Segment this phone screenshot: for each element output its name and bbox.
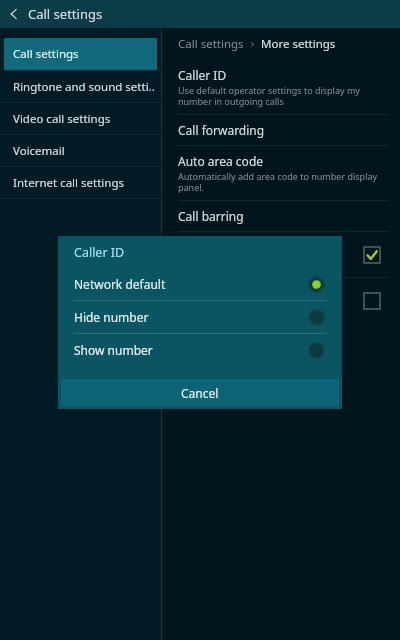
staticText: Ringtone and sound setti.. [13, 79, 155, 95]
button[interactable]: Internet call settings [0, 167, 161, 198]
staticText: Show number [74, 342, 309, 358]
staticText: Call settings [13, 46, 79, 62]
staticText: Auto area code [178, 153, 264, 169]
staticText: Hide number [74, 309, 309, 325]
button[interactable]: Back [0, 0, 28, 28]
staticText: Use default operator settings to display… [178, 84, 360, 107]
staticText: Auto reject [178, 293, 364, 309]
staticText: Caller ID [74, 244, 125, 261]
button[interactable]: Show number [58, 334, 342, 366]
staticText: Call settings [28, 5, 103, 23]
button[interactable]: Network default [58, 268, 342, 300]
button[interactable]: Cancel [61, 379, 339, 406]
staticText: More settings [261, 36, 336, 52]
staticText: Call forwarding [178, 122, 265, 138]
staticText: Network default [74, 276, 309, 292]
button[interactable]: Call barring [162, 201, 400, 231]
staticText: Internet call settings [13, 175, 124, 191]
staticText: Voicemail [13, 143, 65, 159]
button[interactable]: Auto area code [162, 146, 400, 200]
staticText: Automatically add area code to number di… [178, 170, 378, 193]
button[interactable]: Call forwarding [162, 115, 400, 145]
button[interactable]: Voicemail [0, 135, 161, 166]
staticText: Call barring [178, 208, 244, 224]
staticText: Caller ID [178, 67, 227, 83]
staticText: Auto reject [178, 247, 364, 263]
button[interactable]: Call settings [4, 38, 157, 70]
button[interactable]: Call settings [162, 28, 400, 60]
button[interactable]: Auto reject [162, 278, 400, 323]
button[interactable]: Hide number [58, 301, 342, 333]
button[interactable]: Ringtone and sound setti.. [0, 71, 161, 102]
button[interactable]: Caller ID [162, 60, 400, 114]
button[interactable]: Auto reject [162, 232, 400, 277]
staticText: Video call settings [13, 111, 111, 127]
button[interactable]: Video call settings [0, 103, 161, 134]
staticText: Call settings [178, 36, 244, 52]
staticText: Cancel [181, 385, 219, 401]
